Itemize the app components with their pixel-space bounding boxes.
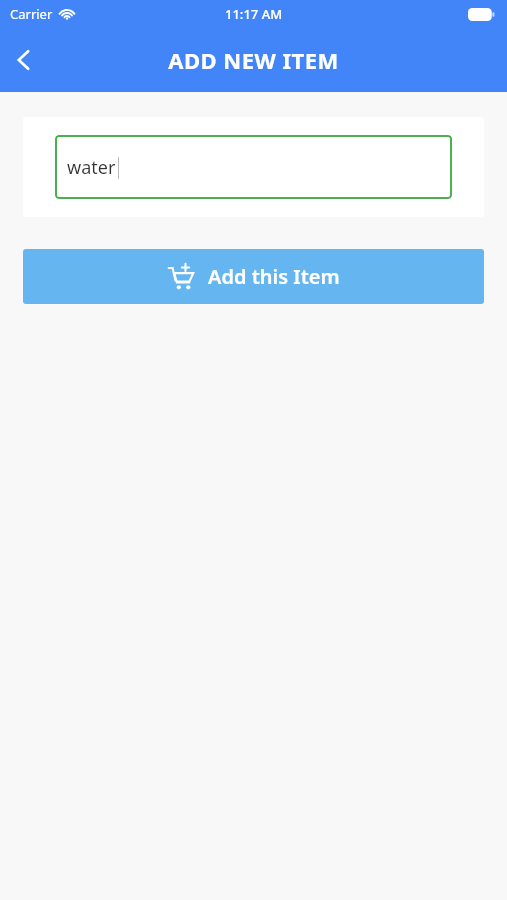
staticText: 11:17 AM bbox=[225, 5, 283, 23]
button[interactable]: Back bbox=[0, 36, 48, 84]
button[interactable]: Add this Item bbox=[23, 249, 484, 304]
staticText: Carrier bbox=[10, 5, 53, 23]
button[interactable]: water bbox=[55, 135, 452, 199]
staticText: ADD NEW ITEM bbox=[168, 45, 339, 75]
staticText: Add this Item bbox=[208, 263, 340, 290]
staticText: water bbox=[67, 155, 116, 180]
